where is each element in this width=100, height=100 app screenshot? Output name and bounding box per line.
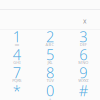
button[interactable]: 7 [0, 65, 33, 83]
staticText: # [79, 81, 88, 100]
staticText: x [83, 17, 87, 25]
button[interactable]: Delete [80, 17, 90, 25]
staticText: 8 [46, 63, 54, 82]
button[interactable]: 2 [33, 29, 66, 47]
button[interactable]: 8 [33, 65, 66, 83]
button[interactable]: 1 [0, 29, 33, 47]
button[interactable]: 4 [0, 47, 33, 65]
staticText: TUV [46, 78, 53, 83]
button[interactable]: 3 [67, 29, 100, 47]
button[interactable]: 0 [33, 83, 66, 100]
staticText: 9 [79, 63, 87, 82]
staticText: * [13, 81, 21, 100]
staticText: 5 [46, 45, 54, 64]
button[interactable]: 5 [33, 47, 66, 65]
button[interactable]: * [0, 83, 33, 100]
staticText: 4 [13, 45, 21, 64]
staticText: ABC [45, 42, 54, 47]
staticText: MNO [78, 60, 88, 65]
staticText: 7 [13, 63, 21, 82]
staticText: PQRS [12, 78, 21, 83]
staticText: 1 [13, 27, 21, 46]
button[interactable]: # [67, 83, 100, 100]
staticText: 0 [46, 81, 54, 100]
staticText: oo [15, 42, 19, 47]
staticText: + [49, 96, 51, 100]
staticText: GHI [13, 60, 20, 65]
staticText: JKL [47, 60, 52, 65]
staticText: WXYZ [78, 78, 88, 83]
staticText: 2 [46, 27, 54, 46]
staticText: DEF [80, 42, 87, 47]
staticText: 3 [79, 27, 87, 46]
button[interactable]: 9 [67, 65, 100, 83]
staticText: 6 [79, 45, 87, 64]
button[interactable]: 6 [67, 47, 100, 65]
